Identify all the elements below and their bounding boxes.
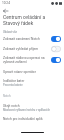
staticText: Ukázat vše [3, 30, 18, 33]
button[interactable]: Toggle [51, 57, 61, 63]
button[interactable]: Upravit název operátor [3, 70, 36, 74]
button[interactable]: Toggle [51, 36, 61, 42]
button[interactable]: Zobrazit vyhledat příjem [3, 47, 39, 51]
staticText: Centrum ovládání a Stavový řádek [3, 14, 56, 26]
staticText: Notch [3, 94, 11, 97]
staticText: vybrané zařízení [3, 60, 27, 64]
staticText: Zobrazit oznámení Notch [3, 37, 40, 41]
staticText: Skrýt notch [3, 104, 20, 108]
button[interactable]: Toggle [51, 46, 61, 52]
staticText: 10:24 [2, 1, 10, 5]
staticText: Zobrazit rádiovou operaci na [3, 56, 45, 60]
staticText: Upravit název operátor [3, 70, 36, 74]
staticText: Notch pro individuální aplik [3, 117, 43, 121]
staticText: Procenta baterie [3, 83, 23, 86]
button[interactable]: Back [1, 6, 10, 15]
button[interactable]: Zobrazit oznámení Notch [3, 37, 40, 41]
staticText: Maskovat vyhlazení notchu v aplikacích [3, 108, 51, 111]
staticText: Indikátor bater [3, 79, 25, 83]
staticText: Zobrazit vyhledat příjem [3, 47, 39, 51]
button[interactable]: Notch pro individuální aplik [3, 117, 43, 121]
